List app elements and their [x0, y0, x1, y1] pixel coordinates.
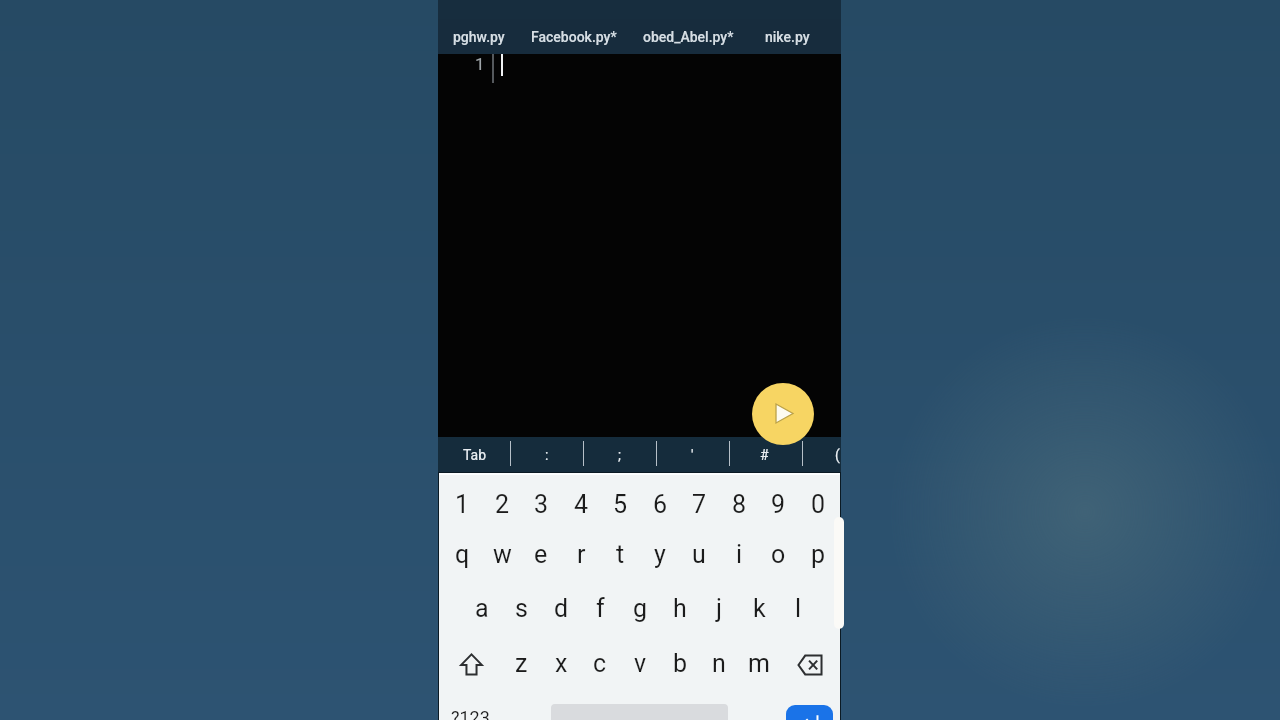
staticText: l — [795, 594, 802, 623]
staticText: s — [515, 594, 528, 623]
button[interactable]: Tab — [449, 437, 501, 472]
button[interactable]: c — [580, 637, 620, 689]
button[interactable]: h — [660, 582, 700, 634]
button[interactable]: d — [541, 582, 581, 634]
staticText: e — [534, 540, 548, 569]
staticText: ?123 — [451, 707, 490, 720]
staticText: m — [748, 649, 770, 678]
button[interactable]: 1 — [442, 478, 482, 530]
button[interactable]: u — [679, 528, 719, 580]
button[interactable]: r — [561, 528, 601, 580]
button[interactable]: 9 — [758, 478, 798, 530]
staticText: o — [771, 540, 786, 569]
button[interactable]: 6 — [640, 478, 680, 530]
staticText: 3 — [534, 490, 549, 519]
staticText: ; — [618, 447, 621, 463]
staticText: c — [593, 649, 607, 678]
staticText: g — [633, 594, 648, 623]
button[interactable]: 2 — [482, 478, 522, 530]
button[interactable]: v — [620, 637, 660, 689]
button[interactable]: 7 — [679, 478, 719, 530]
staticText: Tab — [463, 447, 487, 463]
staticText: # — [760, 447, 769, 463]
button[interactable]: s — [501, 582, 541, 634]
staticText: i — [736, 540, 743, 569]
button[interactable]: : — [521, 437, 573, 472]
button[interactable]: n — [699, 637, 739, 689]
staticText: n — [712, 649, 726, 678]
staticText: 1 — [475, 54, 485, 74]
staticText: obed_Abel.py* — [643, 29, 734, 45]
staticText: ( — [835, 447, 840, 463]
staticText: pghw.py — [453, 29, 505, 45]
button[interactable]: w — [482, 528, 522, 580]
staticText: r — [577, 540, 586, 569]
staticText: 4 — [574, 490, 589, 519]
staticText: x — [555, 649, 568, 678]
button[interactable]: 3 — [521, 478, 561, 530]
button[interactable]: Run script — [752, 383, 814, 445]
button[interactable]: nike.py — [759, 19, 816, 54]
staticText: Facebook.py* — [531, 29, 617, 45]
button[interactable]: obed_Abel.py* — [636, 19, 741, 54]
staticText: q — [455, 540, 470, 569]
staticText: 9 — [771, 490, 786, 519]
staticText: v — [634, 649, 647, 678]
staticText: 1 — [455, 490, 470, 519]
staticText: ' — [691, 447, 694, 463]
button[interactable]: 4 — [561, 478, 601, 530]
button[interactable]: f — [580, 582, 620, 634]
button[interactable]: pghw.py — [446, 19, 511, 54]
staticText: d — [554, 594, 569, 623]
button[interactable]: o — [758, 528, 798, 580]
button[interactable]: y — [640, 528, 680, 580]
staticText: 7 — [692, 490, 707, 519]
button[interactable]: Facebook.py* — [524, 19, 624, 54]
button[interactable]: 5 — [600, 478, 640, 530]
button[interactable]: a — [462, 582, 502, 634]
staticText: h — [673, 594, 687, 623]
button[interactable]: ?123 — [448, 695, 492, 720]
staticText: a — [475, 594, 489, 623]
staticText: y — [654, 540, 666, 569]
staticText: 2 — [495, 490, 510, 519]
staticText: 6 — [653, 490, 668, 519]
staticText: : — [545, 447, 549, 463]
staticText: j — [716, 594, 722, 623]
button[interactable]: q — [442, 528, 482, 580]
button[interactable]: Enter — [786, 705, 833, 720]
staticText: 5 — [613, 490, 628, 519]
staticText: b — [673, 649, 688, 678]
button[interactable]: p — [798, 528, 838, 580]
button[interactable]: ( — [811, 437, 863, 472]
button[interactable]: ' — [666, 437, 718, 472]
button[interactable]: x — [541, 637, 581, 689]
button[interactable]: 0 — [798, 478, 838, 530]
button[interactable]: l — [778, 582, 818, 634]
staticText: k — [753, 594, 766, 623]
staticText: 8 — [732, 490, 747, 519]
button[interactable]: z — [501, 637, 541, 689]
button[interactable]: # — [738, 437, 790, 472]
button[interactable]: ; — [593, 437, 645, 472]
button[interactable]: g — [620, 582, 660, 634]
staticText: nike.py — [765, 29, 810, 45]
button[interactable]: e — [521, 528, 561, 580]
button[interactable]: 8 — [719, 478, 759, 530]
button[interactable]: k — [739, 582, 779, 634]
button[interactable]: m — [739, 637, 779, 689]
button[interactable]: Backspace — [790, 639, 830, 690]
staticText: w — [493, 540, 512, 569]
staticText: f — [596, 594, 605, 623]
button[interactable]: Shift — [451, 639, 491, 690]
staticText: u — [692, 540, 706, 569]
button[interactable]: i — [719, 528, 759, 580]
staticText: p — [811, 540, 826, 569]
staticText: t — [616, 540, 625, 569]
button[interactable]: b — [660, 637, 700, 689]
button[interactable]: j — [699, 582, 739, 634]
staticText: z — [515, 649, 528, 678]
button[interactable]: t — [600, 528, 640, 580]
button[interactable]: Resize keyboard — [834, 517, 844, 629]
